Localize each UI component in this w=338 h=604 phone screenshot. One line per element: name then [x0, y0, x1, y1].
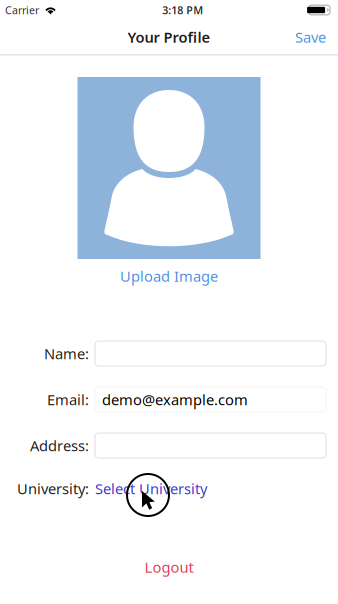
button[interactable]: demo@example.com — [95, 387, 326, 412]
button[interactable]: Select University — [95, 479, 326, 498]
button[interactable]: Logout — [126, 556, 211, 578]
button[interactable]: Save — [283, 20, 338, 54]
staticText: Carrier — [5, 3, 39, 17]
staticText: Name: — [44, 344, 89, 363]
staticText: Email: — [47, 390, 89, 409]
staticText: Address: — [30, 436, 89, 455]
staticText: Upload Image — [120, 266, 218, 286]
button[interactable] — [95, 341, 326, 366]
staticText: Your Profile — [127, 27, 210, 47]
staticText: demo@example.com — [102, 390, 248, 409]
staticText: 3:18 PM — [162, 3, 203, 17]
button[interactable]: Upload Image — [108, 266, 230, 286]
button[interactable] — [95, 433, 326, 458]
staticText: Logout — [144, 557, 193, 577]
staticText: University: — [17, 479, 89, 498]
staticText: Save — [295, 27, 326, 47]
staticText: Select University — [95, 479, 207, 498]
